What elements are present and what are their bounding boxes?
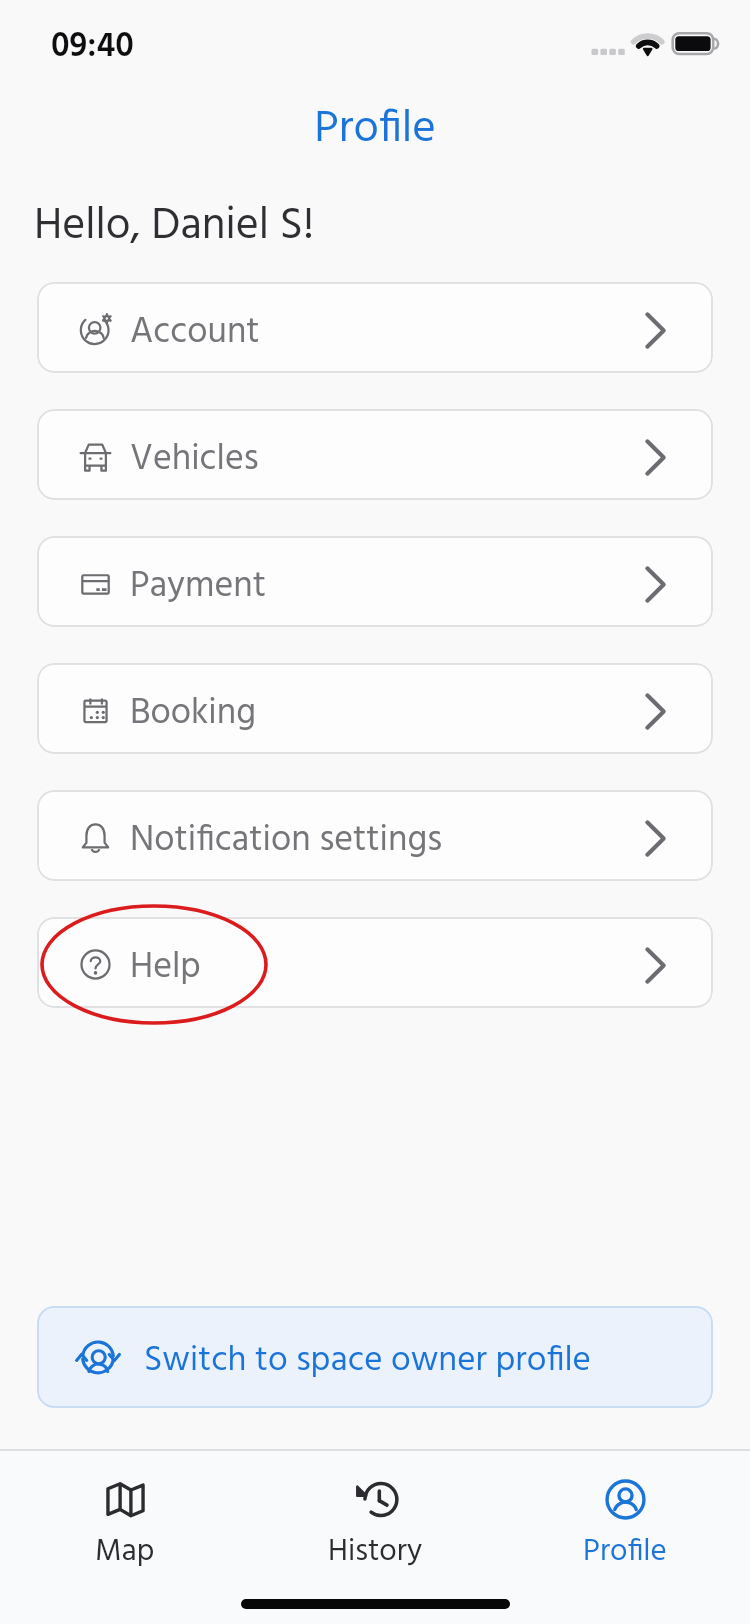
staticText: Booking bbox=[130, 685, 256, 743]
button[interactable]: Booking bbox=[37, 663, 713, 754]
staticText: History bbox=[328, 1527, 423, 1575]
staticText: Account bbox=[130, 304, 260, 362]
staticText: Vehicles bbox=[130, 431, 259, 489]
staticText: Notification settings bbox=[130, 812, 443, 870]
button[interactable]: Notification settings bbox=[37, 790, 713, 881]
staticText: Map bbox=[95, 1527, 155, 1575]
button[interactable]: Switch to space owner profile bbox=[37, 1306, 713, 1408]
staticText: Profile bbox=[314, 94, 436, 154]
staticText: Help bbox=[130, 939, 201, 997]
button[interactable]: Profile bbox=[500, 1451, 750, 1575]
staticText: Profile bbox=[583, 1527, 667, 1575]
button[interactable]: Account bbox=[37, 282, 713, 373]
button[interactable]: Payment bbox=[37, 536, 713, 627]
button[interactable]: Map bbox=[0, 1451, 250, 1575]
staticText: Switch to space owner profile bbox=[144, 1333, 591, 1389]
button[interactable]: Help bbox=[37, 917, 713, 1008]
button[interactable]: History bbox=[250, 1451, 500, 1575]
staticText: Hello, Daniel S! bbox=[34, 192, 314, 262]
button[interactable]: Vehicles bbox=[37, 409, 713, 500]
staticText: 09:40 bbox=[51, 20, 134, 74]
staticText: Payment bbox=[130, 558, 267, 616]
